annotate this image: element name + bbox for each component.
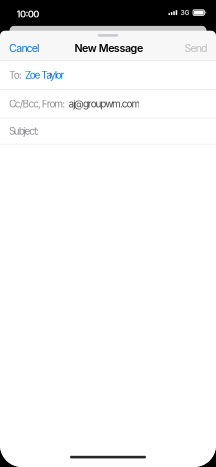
button[interactable]: Send	[175, 38, 216, 60]
staticText: Zoe Taylor	[25, 69, 64, 81]
staticText: 10:00	[16, 8, 39, 20]
button[interactable]: Cc/Bcc, From:	[0, 90, 216, 118]
staticText: Send	[184, 42, 208, 54]
button[interactable]: To:	[0, 61, 216, 90]
staticText: Subject:	[9, 125, 39, 137]
staticText: To:	[9, 69, 22, 81]
button[interactable]: Subject:	[0, 118, 216, 144]
button[interactable]: Cancel	[0, 38, 48, 60]
staticText: 3G	[180, 9, 189, 17]
staticText: Cc/Bcc, From:	[9, 98, 65, 110]
staticText: New Message	[75, 42, 143, 54]
staticText: aj@groupwm.com	[68, 98, 140, 110]
staticText: Cancel	[9, 42, 40, 54]
